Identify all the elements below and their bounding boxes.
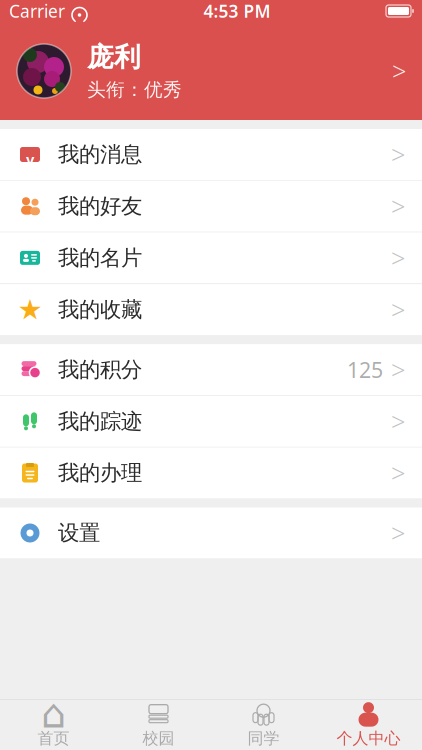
staticText: 我的消息 [58,141,142,168]
button[interactable]: ★ [0,284,422,335]
button[interactable]: 个人中心 [316,700,421,750]
button[interactable]: 庞利 [0,22,422,120]
staticText: > [391,353,405,386]
button[interactable]: v [0,129,422,181]
staticText: Carrier [9,0,65,22]
staticText: 我的踪迹 [58,408,142,434]
button[interactable]: 校园 [106,700,211,750]
staticText: 首页 [37,729,69,748]
staticText: 我的好友 [58,193,142,219]
button[interactable]: ⌂ [1,700,106,750]
staticText: 我的积分 [58,356,142,383]
staticText: 我的名片 [58,245,142,271]
staticText: 个人中心 [336,729,400,748]
staticText: 校园 [142,729,174,748]
button[interactable]: 我的名片 [0,232,422,284]
staticText: > [391,138,405,171]
staticText: 同学 [247,729,279,748]
staticText: 我的办理 [58,460,142,486]
staticText: ⌂ [41,691,66,736]
staticText: 头衔：优秀 [87,78,182,101]
staticText: > [391,456,405,490]
button[interactable]: 我的办理 [0,447,422,498]
staticText: > [391,293,405,326]
staticText: ★ [17,294,42,325]
staticText: 设置 [58,520,100,546]
staticText: 庞利 [87,41,141,73]
staticText: 125 [347,355,383,384]
button[interactable]: 我的好友 [0,181,422,232]
button[interactable]: 我的踪迹 [0,396,422,447]
staticText: > [391,404,405,438]
button[interactable]: 同学 [211,700,316,750]
button[interactable]: 我的积分 [0,344,422,396]
button[interactable]: 设置 [0,507,422,558]
staticText: 4:53 PM [203,0,270,22]
staticText: 我的收藏 [58,296,142,323]
staticText: > [392,54,406,88]
staticText: > [391,241,405,275]
staticText: > [391,516,405,550]
staticText: v [26,149,34,169]
staticText: > [391,189,405,223]
